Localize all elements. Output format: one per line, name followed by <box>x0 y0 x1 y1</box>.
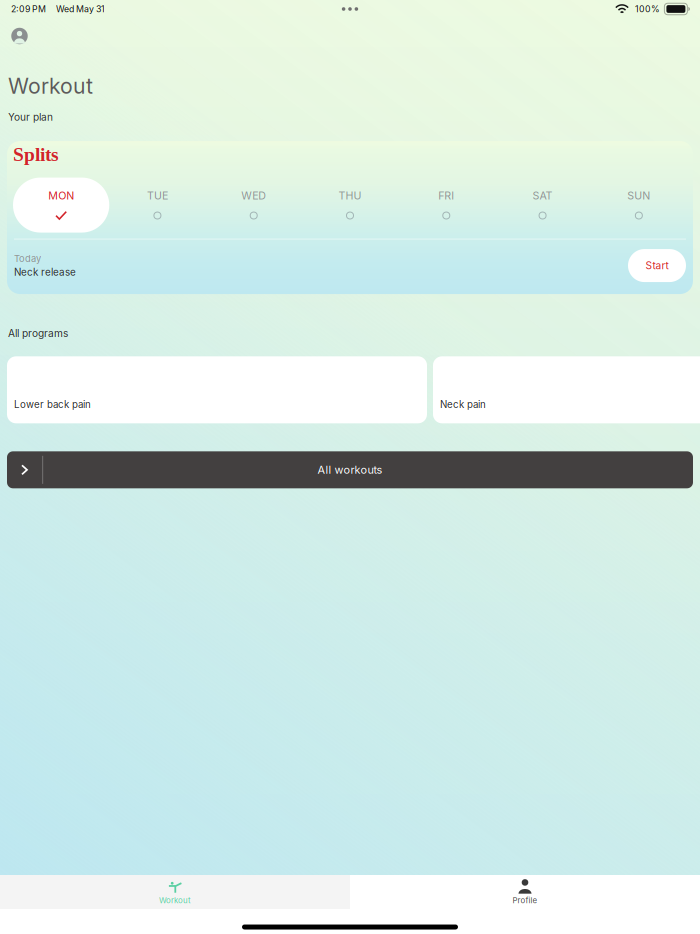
staticText: Start <box>645 259 668 272</box>
button[interactable]: THU <box>302 178 398 233</box>
staticText: FRI <box>438 189 454 202</box>
button[interactable]: MON <box>13 178 109 233</box>
button[interactable]: All workouts <box>7 451 693 488</box>
staticText: Splits <box>13 144 59 165</box>
staticText: Your plan <box>8 111 53 123</box>
staticText: All programs <box>8 327 68 339</box>
staticText: Profile <box>512 896 537 905</box>
staticText: Lower back pain <box>14 399 91 410</box>
staticText: SAT <box>533 189 553 202</box>
staticText: Neck release <box>14 266 76 278</box>
button[interactable]: Start <box>628 249 686 282</box>
button[interactable]: TUE <box>109 178 206 233</box>
staticText: All workouts <box>317 463 382 476</box>
button[interactable]: FRI <box>398 178 494 233</box>
button[interactable]: Lower back pain <box>7 356 427 423</box>
button[interactable]: WED <box>206 178 302 233</box>
staticText: Today <box>14 253 41 264</box>
staticText: Wed May 31 <box>56 4 105 14</box>
button[interactable]: Neck pain <box>433 356 700 423</box>
button[interactable]: Profile <box>350 875 700 909</box>
staticText: Neck pain <box>440 399 486 410</box>
staticText: MON <box>48 189 74 202</box>
button[interactable]: SAT <box>494 178 591 233</box>
staticText: TUE <box>147 189 168 202</box>
staticText: 100% <box>635 4 660 14</box>
staticText: THU <box>338 189 361 202</box>
staticText: SUN <box>627 189 650 202</box>
staticText: Workout <box>8 73 93 99</box>
staticText: 2:09 PM <box>11 4 46 14</box>
staticText: WED <box>241 189 266 202</box>
button[interactable]: SUN <box>591 178 687 233</box>
staticText: Workout <box>159 896 191 905</box>
button[interactable]: Workout <box>0 875 350 909</box>
button[interactable]: Account <box>0 18 44 54</box>
